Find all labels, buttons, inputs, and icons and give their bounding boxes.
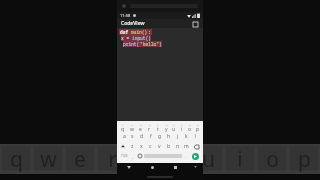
button[interactable]: Run code: [191, 20, 199, 28]
button[interactable]: x: [137, 142, 146, 151]
button[interactable]: n: [173, 142, 182, 151]
button[interactable]: 5: [154, 123, 162, 132]
staticText: r: [108, 145, 117, 174]
button[interactable]: 6: [162, 123, 170, 132]
button[interactable]: m: [182, 142, 191, 151]
button[interactable]: Send: [192, 153, 199, 160]
button[interactable]: def: [117, 28, 203, 121]
staticText: w: [130, 126, 134, 132]
staticText: q: [10, 145, 23, 174]
button[interactable]: s: [128, 132, 137, 141]
button[interactable]: c: [146, 142, 155, 151]
button[interactable]: 7: [170, 123, 178, 132]
button[interactable]: 0: [194, 123, 202, 132]
staticText: x =: [121, 35, 132, 41]
staticText: i: [181, 126, 183, 132]
staticText: y: [165, 126, 168, 132]
staticText: o: [188, 126, 192, 132]
staticText: 11:58: [120, 13, 131, 18]
staticText: s: [131, 133, 134, 140]
staticText: 4: [149, 123, 151, 126]
staticText: e: [139, 126, 142, 132]
button[interactable]: 1: [118, 123, 127, 132]
staticText: p: [196, 126, 200, 132]
button[interactable]: 9: [186, 123, 194, 132]
button[interactable]: 2: [127, 123, 136, 132]
staticText: m: [184, 143, 189, 150]
staticText: i: [237, 145, 243, 174]
staticText: u: [202, 145, 215, 174]
staticText: d: [140, 133, 144, 140]
button[interactable]: a: [120, 132, 128, 141]
staticText: main(): [131, 29, 148, 35]
button[interactable]: f: [146, 132, 155, 141]
staticText: ,: [132, 154, 134, 159]
staticText: p: [298, 145, 311, 174]
staticText: f: [150, 133, 152, 140]
staticText: k: [185, 133, 188, 140]
button[interactable]: k: [182, 132, 191, 141]
button[interactable]: z: [128, 142, 137, 151]
button[interactable]: ?123: [119, 151, 129, 161]
staticText: print(: [123, 41, 140, 47]
staticText: ?123: [121, 154, 128, 158]
button[interactable]: Hide keyboard: [187, 163, 203, 171]
button[interactable]: j: [173, 132, 182, 141]
staticText: 2: [131, 123, 133, 126]
staticText: y: [171, 145, 182, 174]
staticText: q: [121, 126, 125, 132]
staticText: 9: [189, 123, 191, 126]
staticText: g: [158, 133, 162, 140]
staticText: ): [159, 41, 162, 47]
staticText: input(): [132, 35, 151, 41]
staticText: .: [185, 154, 187, 159]
staticText: o: [266, 145, 279, 174]
button[interactable]: 4: [145, 123, 154, 132]
staticText: :: [148, 29, 151, 35]
staticText: x: [140, 143, 143, 150]
staticText: r: [148, 126, 151, 132]
staticText: e: [74, 145, 86, 174]
staticText: 3: [140, 123, 142, 126]
staticText: n: [176, 143, 180, 150]
staticText: v: [158, 143, 161, 150]
button[interactable]: Home: [141, 163, 164, 171]
staticText: j: [177, 133, 179, 140]
button[interactable]: Back: [117, 163, 141, 171]
staticText: w: [40, 145, 57, 174]
staticText: def: [120, 29, 131, 35]
staticText: a: [123, 133, 126, 140]
button[interactable]: Backspace: [191, 142, 202, 151]
staticText: 1: [122, 123, 124, 126]
button[interactable]: b: [164, 142, 173, 151]
staticText: c: [149, 143, 152, 150]
button[interactable]: g: [155, 132, 164, 141]
staticText: h: [167, 133, 171, 140]
button[interactable]: Recent apps: [164, 163, 187, 171]
button[interactable]: 3: [136, 123, 145, 132]
staticText: l: [195, 133, 197, 140]
staticText: "hello": [140, 41, 159, 47]
staticText: t: [157, 126, 159, 132]
staticText: 5: [157, 123, 159, 126]
button[interactable]: 8: [178, 123, 186, 132]
staticText: b: [167, 143, 171, 150]
staticText: 7: [173, 123, 175, 126]
button[interactable]: d: [137, 132, 146, 141]
staticText: 0: [197, 123, 199, 126]
button[interactable]: v: [155, 142, 164, 151]
staticText: t: [140, 145, 148, 174]
button[interactable]: h: [164, 132, 173, 141]
button[interactable]: Emoji: [136, 151, 144, 161]
staticText: CodeView: [121, 20, 145, 27]
staticText: 8: [181, 123, 183, 126]
staticText: 6: [166, 123, 168, 126]
staticText: z: [131, 143, 134, 150]
button[interactable]: Shift: [118, 142, 128, 151]
button[interactable]: ,: [129, 151, 136, 161]
button[interactable]: l: [191, 132, 200, 141]
staticText: u: [172, 126, 176, 132]
